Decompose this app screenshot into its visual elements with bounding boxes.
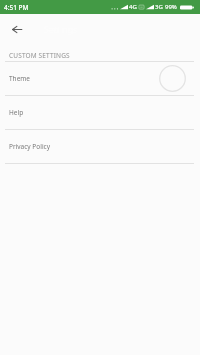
staticText: CUSTOM SETTINGS [9, 51, 70, 60]
button[interactable]: Help [0, 96, 200, 130]
staticText: 3G [155, 3, 163, 11]
button[interactable]: Privacy Policy [0, 130, 200, 164]
staticText: 4:51 PM [4, 3, 29, 12]
staticText: 99% [165, 3, 177, 11]
staticText: Privacy Policy [9, 142, 51, 151]
staticText: 4G [129, 3, 137, 11]
staticText: Help [9, 108, 24, 117]
staticText: Theme [9, 74, 31, 83]
button[interactable]: Theme [0, 62, 200, 96]
button[interactable]: Back [6, 18, 28, 40]
